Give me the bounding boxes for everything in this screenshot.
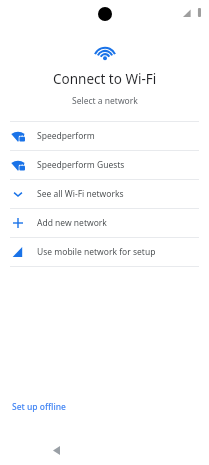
button[interactable]: Set up offline [0, 395, 209, 419]
staticText: Speedperform Guests [37, 159, 125, 171]
button[interactable]: Use mobile network for setup [0, 238, 209, 266]
staticText: Add new network [37, 217, 107, 229]
staticText: Select a network [72, 95, 138, 107]
staticText: Connect to Wi-Fi [53, 70, 157, 88]
button[interactable]: Back [46, 440, 66, 460]
staticText: Speedperform [37, 130, 95, 142]
staticText: Set up offline [12, 401, 66, 413]
button[interactable]: Speedperform [0, 122, 209, 150]
staticText: See all Wi-Fi networks [37, 188, 124, 200]
staticText: Use mobile network for setup [37, 246, 156, 258]
button[interactable]: Speedperform Guests [0, 151, 209, 179]
button[interactable]: Add new network [0, 209, 209, 237]
button[interactable]: See all Wi-Fi networks [0, 180, 209, 208]
